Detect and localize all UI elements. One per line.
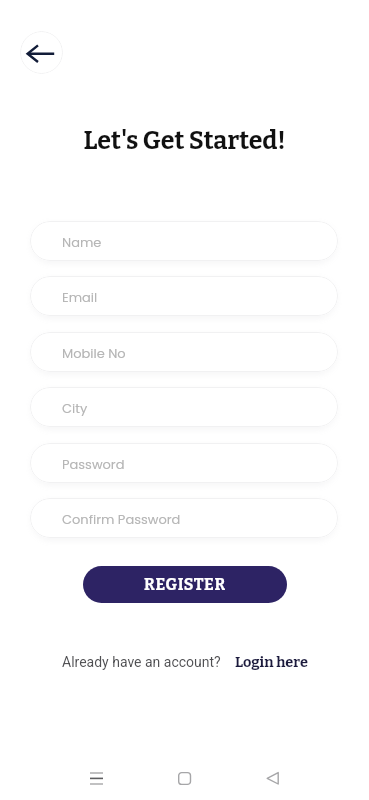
button[interactable]: Email	[30, 276, 338, 316]
button[interactable]: REGISTER	[83, 566, 287, 603]
button[interactable]: Login here	[235, 653, 308, 670]
button[interactable]: Back	[261, 765, 286, 791]
button[interactable]: Home	[172, 765, 197, 791]
staticText: City	[62, 399, 88, 417]
button[interactable]: Name	[30, 221, 338, 261]
staticText: REGISTER	[144, 575, 226, 594]
button[interactable]: Recent apps	[82, 765, 111, 791]
staticText: Name	[62, 233, 102, 251]
button[interactable]: City	[30, 387, 338, 427]
button[interactable]: Password	[30, 443, 338, 483]
button[interactable]: Mobile No	[30, 332, 338, 372]
staticText: Email	[62, 288, 98, 306]
staticText: Already have an account?	[62, 654, 221, 670]
staticText: Let's Get Started!	[0, 126, 369, 156]
button[interactable]: Confirm Password	[30, 498, 338, 538]
staticText: Mobile No	[62, 344, 126, 362]
staticText: Confirm Password	[62, 510, 181, 528]
staticText: Password	[62, 455, 125, 473]
staticText: Login here	[235, 653, 308, 670]
button[interactable]: Back	[20, 31, 63, 74]
